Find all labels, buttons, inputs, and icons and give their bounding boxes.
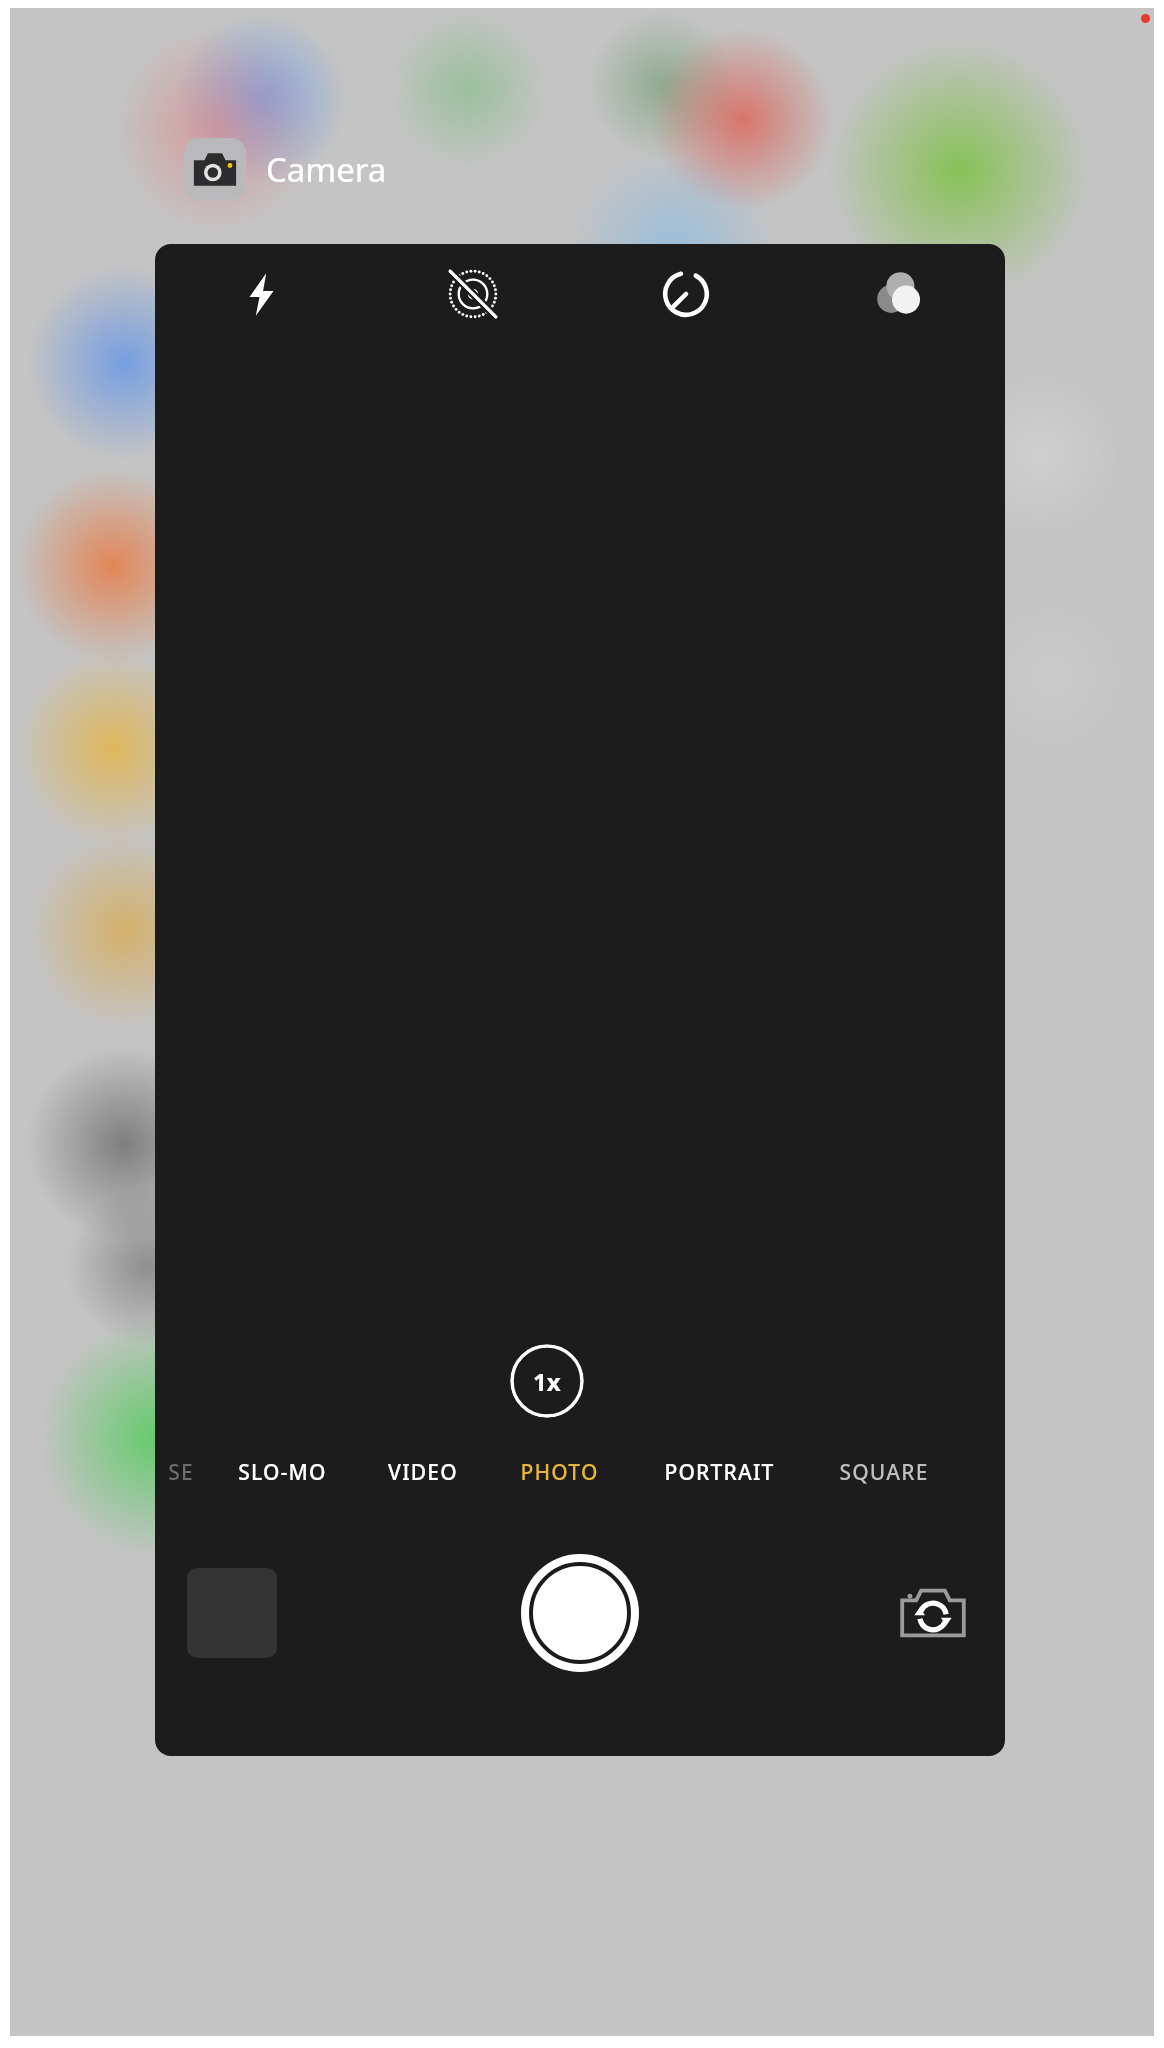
button[interactable]: PHOTO [489, 1436, 629, 1508]
button[interactable]: SLO-MO [207, 1436, 357, 1508]
button[interactable]: Filters [792, 244, 1005, 344]
button[interactable]: PORTRAIT [629, 1436, 809, 1508]
staticText: VIDEO [388, 1458, 458, 1487]
button[interactable]: Flash [155, 244, 367, 344]
button[interactable]: SQUARE [809, 1436, 959, 1508]
button[interactable]: Live Photo off [367, 244, 579, 344]
staticText: 1x [533, 1365, 561, 1398]
staticText: SE [168, 1458, 194, 1487]
staticText: SLO-MO [238, 1458, 327, 1487]
button[interactable]: Take photo [519, 1552, 641, 1674]
button[interactable]: SE [155, 1436, 207, 1508]
button[interactable]: Switch camera [891, 1571, 975, 1655]
staticText: PHOTO [520, 1458, 599, 1487]
staticText: Camera [266, 147, 387, 192]
button[interactable]: Timer [579, 244, 792, 344]
button[interactable]: 1x [510, 1344, 584, 1418]
staticText: SQUARE [839, 1458, 929, 1487]
staticText: PORTRAIT [664, 1458, 775, 1487]
button[interactable]: VIDEO [357, 1436, 489, 1508]
